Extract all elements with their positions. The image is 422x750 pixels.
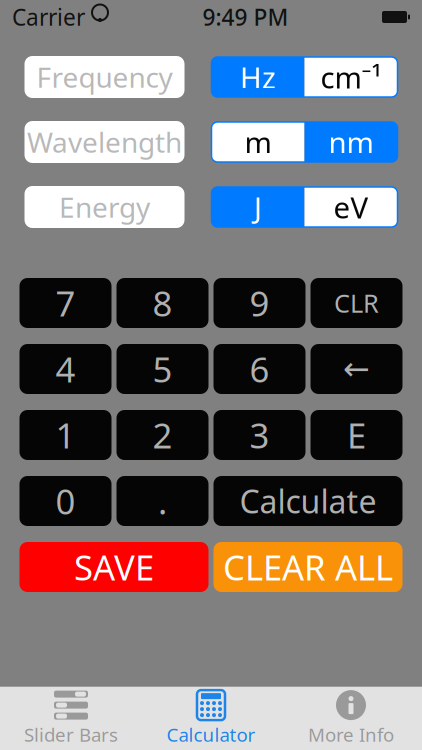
button[interactable]: SAVE [19, 542, 208, 592]
staticText: 9 [249, 280, 269, 326]
button[interactable]: 6 [213, 344, 305, 394]
staticText: 8 [152, 280, 172, 326]
button[interactable]: More Info [281, 689, 421, 747]
button[interactable]: 0 [19, 476, 111, 526]
button[interactable]: eV [304, 187, 397, 227]
button[interactable]: J [211, 187, 304, 227]
staticText: Frequency [36, 58, 172, 96]
button[interactable]: CLR [310, 278, 402, 328]
staticText: nm [328, 122, 373, 161]
button[interactable]: E [310, 410, 402, 460]
staticText: 7 [55, 280, 75, 326]
staticText: J [254, 187, 262, 226]
button[interactable]: m [211, 122, 304, 162]
staticText: Wavelength [27, 123, 182, 161]
staticText: cm⁻¹ [320, 57, 381, 96]
button[interactable]: nm [304, 122, 397, 162]
staticText: 3 [249, 412, 269, 458]
button[interactable]: ← [310, 344, 402, 394]
button[interactable]: 5 [116, 344, 208, 394]
staticText: 6 [249, 346, 269, 392]
button[interactable]: 8 [116, 278, 208, 328]
button[interactable]: Calculate [213, 476, 402, 526]
staticText: 5 [152, 346, 172, 392]
button[interactable]: 3 [213, 410, 305, 460]
button[interactable]: cm⁻¹ [304, 57, 397, 97]
button[interactable]: 1 [19, 410, 111, 460]
staticText: Carrier [12, 2, 85, 32]
button[interactable]: Slider Bars [1, 689, 141, 747]
staticText: CLR [334, 286, 379, 320]
staticText: Slider Bars [24, 722, 118, 747]
button[interactable]: Hz [211, 57, 304, 97]
staticText: 0 [55, 478, 75, 524]
staticText: E [347, 412, 366, 458]
staticText: 9:49 PM [202, 2, 288, 32]
staticText: Hz [240, 57, 276, 96]
staticText: m [244, 122, 271, 161]
staticText: CLEAR ALL [223, 544, 393, 590]
staticText: 2 [152, 412, 172, 458]
button[interactable]: CLEAR ALL [213, 542, 402, 592]
button[interactable]: . [116, 476, 208, 526]
staticText: Calculator [166, 722, 255, 747]
button[interactable]: 7 [19, 278, 111, 328]
staticText: Calculate [239, 480, 376, 522]
button[interactable]: 9 [213, 278, 305, 328]
staticText: ← [343, 351, 370, 387]
staticText: Energy [59, 188, 150, 226]
button[interactable]: 4 [19, 344, 111, 394]
button[interactable]: Calculator [141, 689, 281, 747]
staticText: More Info [308, 722, 394, 747]
staticText: 1 [55, 412, 75, 458]
staticText: 4 [55, 346, 75, 392]
staticText: SAVE [74, 544, 154, 590]
button[interactable]: 2 [116, 410, 208, 460]
staticText: eV [333, 187, 368, 226]
staticText: . [158, 478, 167, 524]
